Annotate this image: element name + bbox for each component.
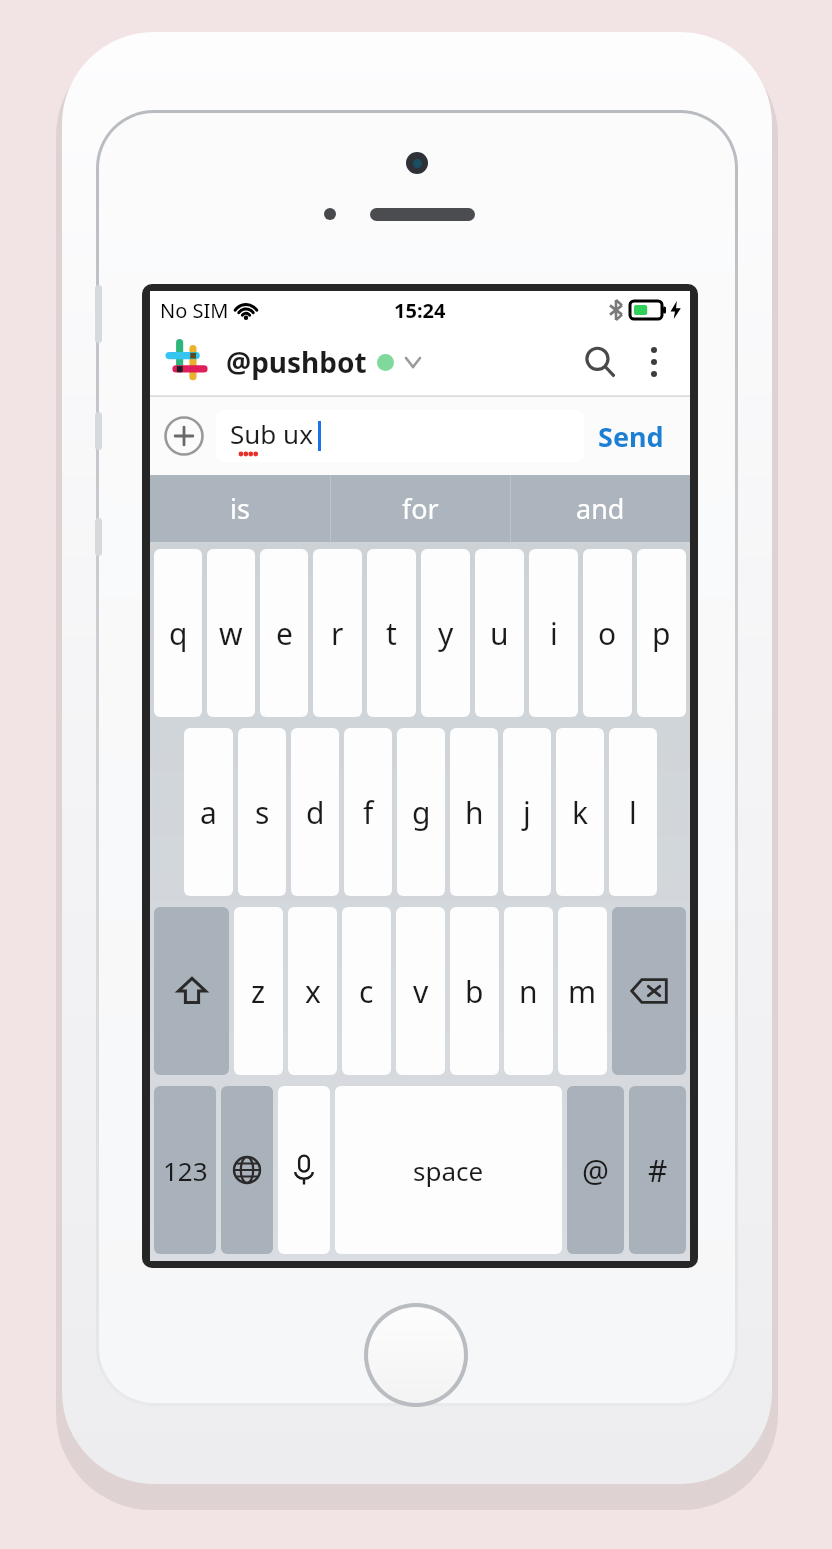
staticText: p — [652, 613, 671, 654]
button[interactable]: c — [342, 907, 391, 1075]
staticText: u — [490, 613, 509, 654]
button[interactable]: n — [504, 907, 553, 1075]
staticText: f — [363, 792, 374, 833]
staticText: b — [465, 971, 484, 1012]
staticText: l — [629, 792, 637, 833]
button[interactable]: y — [421, 549, 470, 717]
button[interactable]: l — [609, 728, 657, 896]
button[interactable]: o — [583, 549, 632, 717]
button[interactable]: Sub ux — [216, 410, 584, 462]
staticText: x — [305, 971, 321, 1012]
staticText: k — [572, 792, 589, 833]
button[interactable]: is — [150, 475, 330, 542]
staticText: i — [550, 613, 558, 654]
staticText: @pushbot — [226, 343, 367, 381]
button[interactable]: t — [367, 549, 416, 717]
staticText: d — [306, 792, 325, 833]
staticText: j — [523, 792, 531, 833]
staticText: t — [386, 613, 397, 654]
staticText: s — [255, 792, 270, 833]
button[interactable]: j — [503, 728, 551, 896]
staticText: # — [648, 1150, 668, 1191]
staticText: 123 — [163, 1153, 208, 1188]
button[interactable]: h — [450, 728, 498, 896]
button[interactable]: p — [637, 549, 686, 717]
button[interactable]: Add attachment — [162, 414, 206, 458]
button[interactable]: m — [558, 907, 607, 1075]
button[interactable]: e — [260, 549, 308, 717]
button[interactable]: a — [184, 728, 233, 896]
staticText: and — [576, 490, 625, 527]
button[interactable]: d — [291, 728, 339, 896]
button[interactable]: f — [344, 728, 392, 896]
staticText: m — [568, 971, 597, 1012]
button[interactable]: Voice input — [278, 1086, 330, 1254]
button[interactable]: i — [529, 549, 578, 717]
staticText: n — [519, 971, 538, 1012]
button[interactable]: s — [238, 728, 286, 896]
staticText: Send — [598, 418, 664, 455]
staticText: No SIM — [160, 297, 229, 324]
button[interactable]: Backspace — [612, 907, 686, 1075]
staticText: is — [230, 490, 250, 527]
button[interactable]: z — [234, 907, 283, 1075]
staticText: a — [200, 792, 217, 833]
button[interactable]: and — [511, 475, 690, 542]
staticText: Sub ux — [230, 416, 313, 451]
button[interactable]: Shift — [154, 907, 229, 1075]
button[interactable]: space — [335, 1086, 562, 1254]
button[interactable]: More options — [632, 340, 676, 384]
button[interactable]: b — [450, 907, 499, 1075]
staticText: g — [412, 792, 431, 833]
button[interactable]: q — [154, 549, 202, 717]
button[interactable]: g — [397, 728, 445, 896]
button[interactable]: Change keyboard language — [221, 1086, 273, 1254]
button[interactable]: @pushbot — [164, 339, 420, 385]
staticText: for — [402, 490, 439, 527]
staticText: y — [438, 613, 454, 654]
staticText: r — [331, 613, 344, 654]
button[interactable]: Send — [584, 408, 678, 465]
staticText: h — [465, 792, 484, 833]
staticText: z — [251, 971, 266, 1012]
staticText: @ — [582, 1150, 609, 1191]
button[interactable]: @ — [567, 1086, 624, 1254]
staticText: e — [276, 613, 293, 654]
button[interactable]: 123 — [154, 1086, 216, 1254]
button[interactable]: v — [396, 907, 445, 1075]
button[interactable]: Home — [364, 1303, 468, 1407]
button[interactable]: k — [556, 728, 604, 896]
button[interactable]: w — [207, 549, 255, 717]
staticText: q — [169, 613, 188, 654]
button[interactable]: # — [629, 1086, 686, 1254]
staticText: 15:24 — [394, 297, 446, 324]
button[interactable]: r — [313, 549, 362, 717]
staticText: space — [413, 1153, 484, 1188]
staticText: c — [359, 971, 374, 1012]
button[interactable]: u — [475, 549, 524, 717]
button[interactable]: x — [288, 907, 337, 1075]
staticText: o — [598, 613, 617, 654]
button[interactable]: Search — [574, 336, 626, 388]
staticText: w — [219, 613, 243, 654]
staticText: v — [413, 971, 429, 1012]
button[interactable]: for — [331, 475, 510, 542]
